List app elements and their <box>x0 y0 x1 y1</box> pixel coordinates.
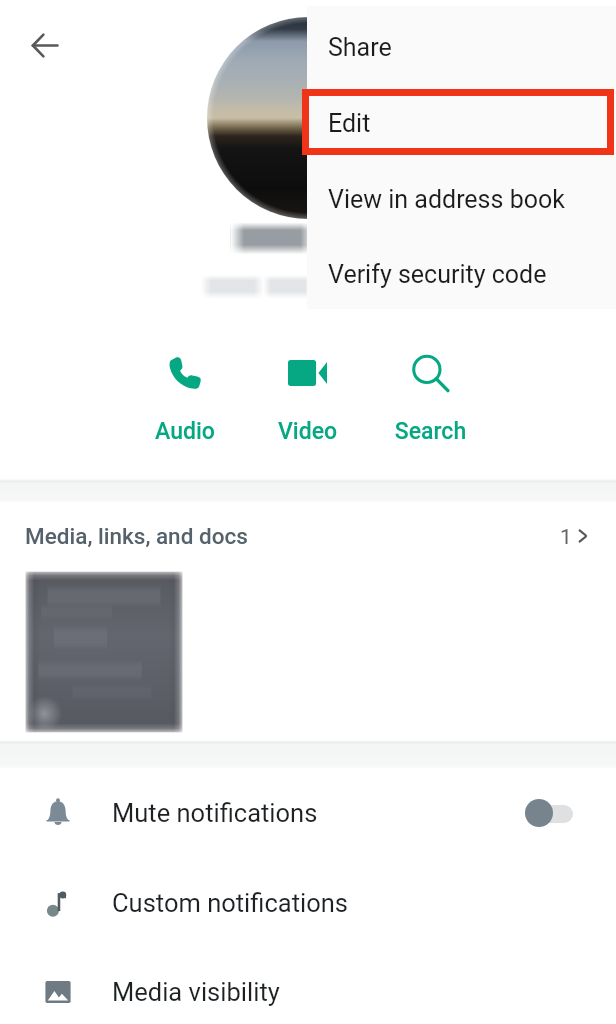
button[interactable]: Video <box>246 345 369 385</box>
button[interactable]: Media, links, and docs <box>0 502 616 740</box>
button[interactable]: Edit <box>307 100 616 156</box>
button[interactable]: Mute notifications <box>0 768 616 857</box>
button[interactable] <box>202 12 414 224</box>
staticText: Custom notifications <box>112 888 348 918</box>
button[interactable]: Media visibility <box>0 947 616 1024</box>
staticText: View in address book <box>328 185 565 214</box>
staticText: Media, links, and docs <box>25 523 248 549</box>
staticText: Search <box>369 418 492 445</box>
staticText: Share <box>328 33 392 62</box>
button[interactable]: Search <box>369 345 492 385</box>
button[interactable]: Back <box>22 23 66 67</box>
staticText: Video <box>246 418 369 445</box>
staticText: Media visibility <box>112 977 280 1007</box>
button[interactable]: Audio <box>124 345 246 385</box>
staticText: Audio <box>124 418 246 445</box>
staticText: Verify security code <box>328 260 547 289</box>
button[interactable]: Custom notifications <box>0 858 616 947</box>
button[interactable]: Verify security code <box>307 251 616 307</box>
button[interactable] <box>22 568 186 736</box>
staticText: Mute notifications <box>112 798 318 828</box>
button[interactable]: View in address book <box>307 176 616 232</box>
staticText: 1 <box>560 525 572 550</box>
button[interactable]: Share <box>307 24 616 80</box>
staticText: Edit <box>328 109 371 138</box>
